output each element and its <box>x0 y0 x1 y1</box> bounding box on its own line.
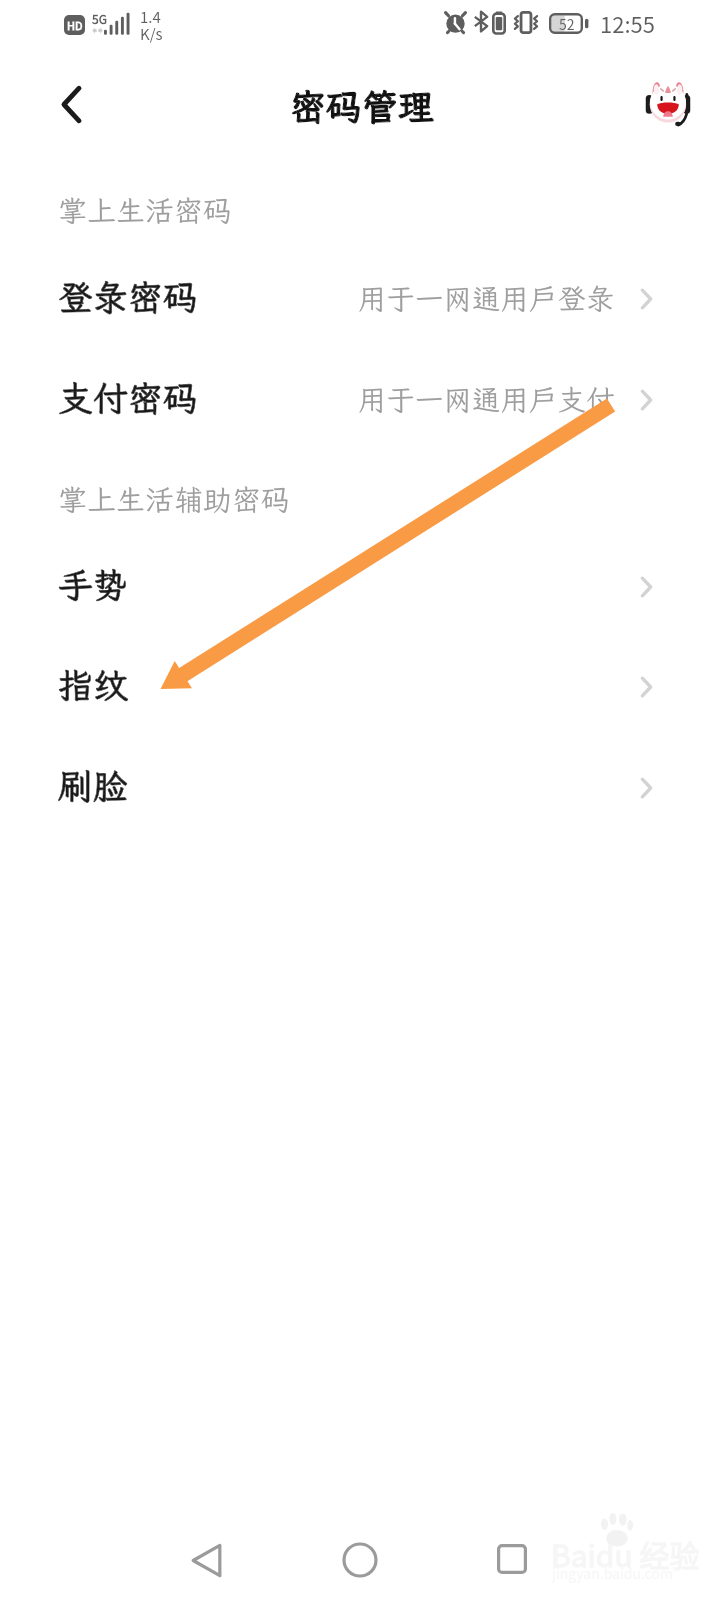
staticText: HD <box>67 17 83 33</box>
staticText: 密码管理 <box>290 83 435 130</box>
staticText: 12:55 <box>600 7 655 39</box>
staticText: 指纹 <box>58 662 129 708</box>
staticText: 掌上生活辅助密码 <box>58 480 291 518</box>
button[interactable]: 登录密码 <box>0 247 720 347</box>
staticText: 指纹 <box>58 662 129 708</box>
staticText: 手势 <box>58 562 129 608</box>
staticText: 1.4 <box>140 6 161 28</box>
staticText: Baidu 经验 <box>551 1532 700 1575</box>
staticText: 刷脸 <box>58 763 129 809</box>
button[interactable]: 返回 <box>40 73 102 135</box>
staticText: 登录密码 <box>58 274 199 320</box>
staticText: 5G <box>92 10 107 27</box>
staticText: 支付密码 <box>58 375 199 421</box>
staticText: jingyan.baidu.com <box>552 1563 673 1583</box>
staticText: 用于一网通用户支付 <box>358 381 615 419</box>
staticText: K/s <box>140 23 163 45</box>
button[interactable]: 支付密码 <box>0 348 720 448</box>
staticText: 登录密码 <box>58 274 199 320</box>
button[interactable]: 指纹 <box>0 635 720 735</box>
staticText: 密码管理 <box>290 83 435 130</box>
button[interactable]: 返回 <box>171 1525 241 1595</box>
button[interactable]: 在线客服 <box>638 71 698 131</box>
staticText: 52 <box>559 14 575 34</box>
button[interactable]: 刷脸 <box>0 736 720 836</box>
staticText: 掌上生活密码 <box>58 191 233 229</box>
button[interactable]: 最近任务 <box>477 1524 547 1594</box>
button[interactable]: 主屏幕 <box>325 1525 395 1595</box>
staticText: 刷脸 <box>58 763 129 809</box>
button[interactable]: 手势 <box>0 535 720 635</box>
staticText: 手势 <box>58 562 129 608</box>
staticText: 支付密码 <box>58 375 199 421</box>
staticText: 用于一网通用户登录 <box>358 280 615 318</box>
